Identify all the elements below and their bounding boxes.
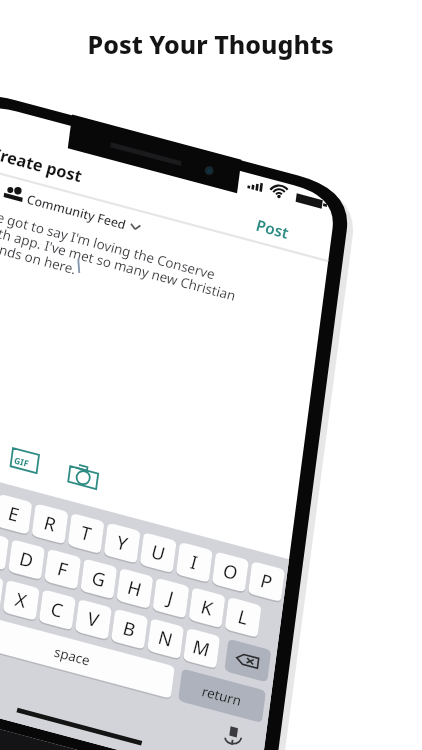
- button[interactable]: Create post screen: [0, 0, 422, 750]
- other: Post Your Thoughts app store screenshot: [0, 0, 422, 750]
